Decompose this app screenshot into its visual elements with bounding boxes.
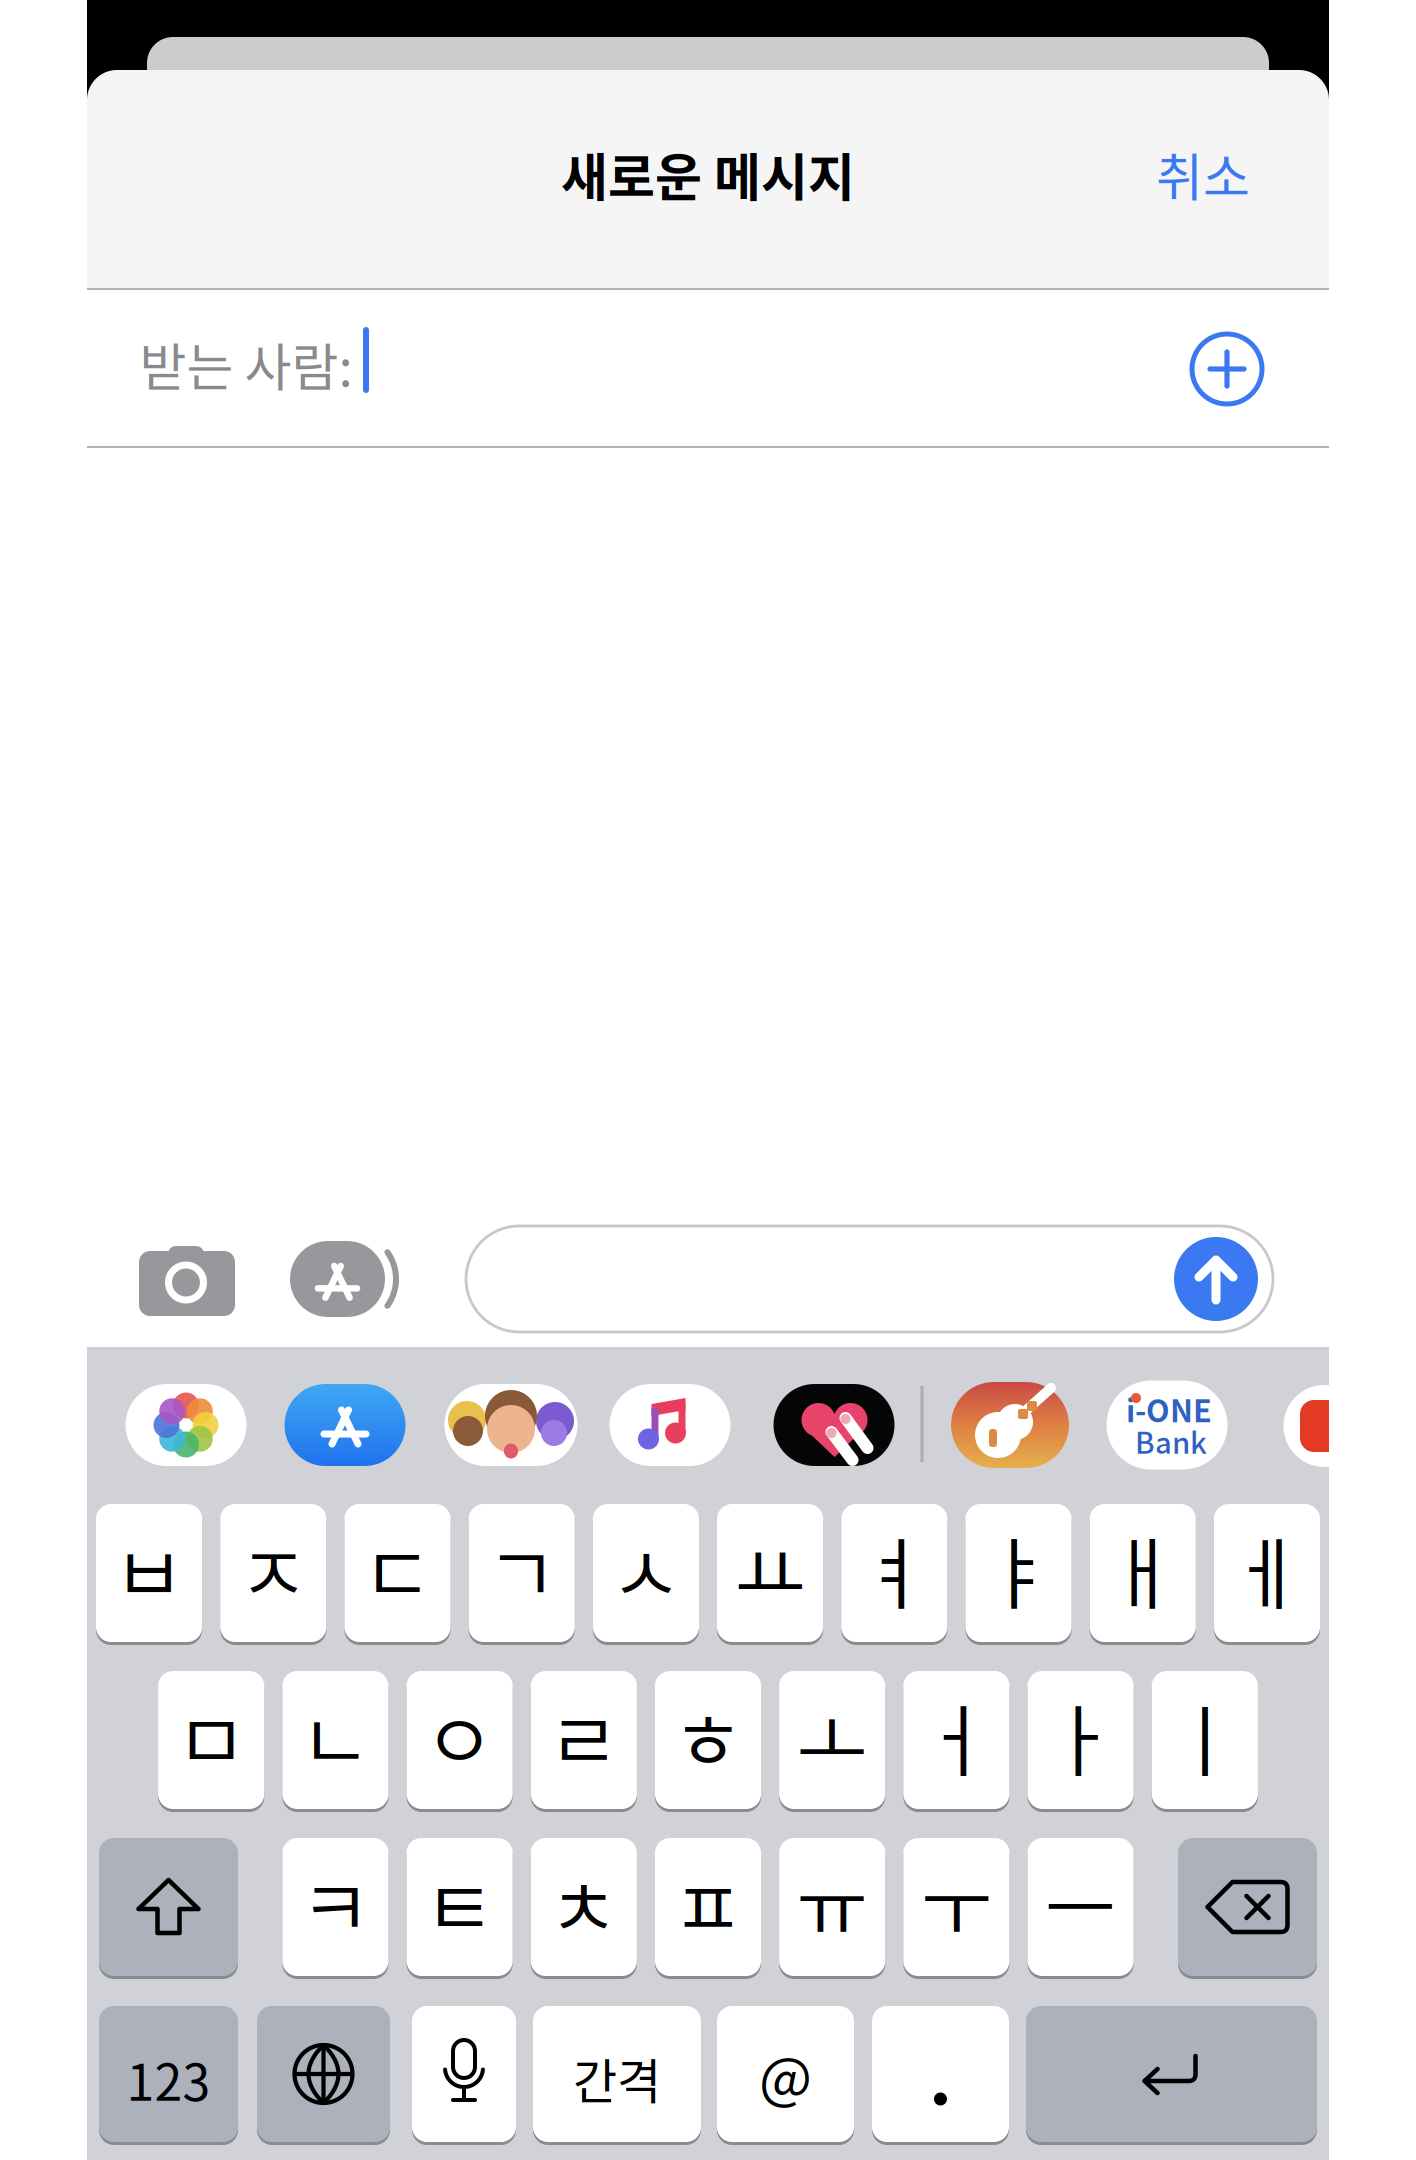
button[interactable] (903, 1671, 1009, 1809)
button[interactable] (1214, 1504, 1320, 1642)
staticText: ㅊ (548, 1846, 620, 1959)
button[interactable] (469, 1504, 575, 1642)
button[interactable] (1027, 1671, 1134, 1809)
button[interactable] (96, 1504, 202, 1642)
staticText: ㅌ (424, 1846, 496, 1959)
button[interactable]: 줄바꿈 (1026, 2006, 1317, 2142)
button[interactable]: 사진 (125, 1384, 246, 1466)
button[interactable]: 다음 키보드 (257, 2006, 390, 2142)
button[interactable] (717, 2006, 854, 2142)
button[interactable] (903, 1838, 1009, 1976)
staticText: ㄱ (486, 1512, 558, 1625)
staticText: ㅅ (610, 1512, 682, 1625)
button[interactable]: App Store (284, 1384, 405, 1466)
button[interactable]: 연락처 추가 (1172, 314, 1282, 424)
staticText: 취소 (1156, 137, 1250, 211)
button[interactable] (655, 1671, 761, 1809)
button[interactable]: iMessage (466, 1226, 1273, 1332)
button[interactable] (1090, 1504, 1196, 1642)
button[interactable] (1027, 1838, 1134, 1976)
staticText: 123 (126, 2043, 210, 2115)
button[interactable]: 미모티콘 (444, 1384, 577, 1466)
button[interactable] (282, 1838, 388, 1976)
staticText: ㅣ (1169, 1679, 1241, 1792)
button[interactable] (406, 1838, 513, 1976)
staticText: ㅎ (672, 1679, 744, 1792)
button[interactable] (655, 1838, 761, 1976)
staticText: ㅓ (920, 1679, 992, 1792)
button[interactable] (531, 1671, 637, 1809)
button[interactable] (531, 1838, 637, 1976)
button[interactable] (1152, 1671, 1258, 1809)
button[interactable]: i-ONE Bank (1106, 1380, 1227, 1469)
staticText: ㄹ (548, 1679, 620, 1792)
staticText: ㅂ (113, 1512, 185, 1625)
button[interactable]: 앱 (773, 1384, 894, 1466)
staticText: ㅠ (796, 1846, 868, 1959)
staticText: ㄷ (361, 1512, 433, 1625)
button[interactable] (965, 1504, 1072, 1642)
button[interactable]: 받아쓰기 (412, 2006, 516, 2142)
button[interactable] (872, 2006, 1009, 2142)
staticText: ㄴ (299, 1679, 371, 1792)
button[interactable] (406, 1671, 513, 1809)
button[interactable] (717, 1504, 823, 1642)
staticText: 새로운 메시지 (561, 137, 855, 211)
staticText: ㅈ (237, 1512, 309, 1625)
staticText: ㅋ (299, 1846, 371, 1959)
staticText: @ (759, 2033, 812, 2115)
button[interactable] (593, 1504, 699, 1642)
button[interactable]: App Store (288, 1240, 408, 1318)
staticText: 받는 사람: (139, 327, 352, 401)
button[interactable] (779, 1838, 885, 1976)
button[interactable] (533, 2006, 701, 2142)
button[interactable] (158, 1671, 264, 1809)
button[interactable] (779, 1671, 885, 1809)
staticText: ㅕ (858, 1512, 930, 1625)
button[interactable] (99, 2006, 238, 2142)
button[interactable] (282, 1671, 388, 1809)
staticText: i-ONE (1126, 1387, 1212, 1431)
staticText: 간격 (573, 2043, 661, 2113)
staticText: ㅡ (1045, 1846, 1117, 1959)
staticText: ㅍ (672, 1846, 744, 1959)
button[interactable]: 보내기 (1174, 1237, 1258, 1321)
staticText: Bank (1135, 1420, 1207, 1462)
staticText: ㅏ (1045, 1679, 1117, 1792)
staticText: ㅑ (982, 1512, 1054, 1625)
button[interactable]: 취소 (1123, 124, 1283, 224)
button[interactable]: GarageBand (951, 1382, 1069, 1468)
button[interactable] (344, 1504, 451, 1642)
button[interactable]: Shift (99, 1838, 238, 1976)
staticText: ㅔ (1231, 1512, 1303, 1625)
staticText: ㅐ (1107, 1512, 1179, 1625)
button[interactable]: 지우기 (1178, 1838, 1317, 1976)
staticText: ㅗ (796, 1679, 868, 1792)
button[interactable] (220, 1504, 326, 1642)
staticText: ㅛ (734, 1512, 806, 1625)
button[interactable]: 음악 (609, 1384, 730, 1466)
staticText: ㅜ (920, 1846, 992, 1959)
button[interactable]: 카메라 (139, 1247, 235, 1319)
staticText: ㅇ (424, 1679, 496, 1792)
button[interactable] (841, 1504, 947, 1642)
staticText: ㅁ (175, 1679, 247, 1792)
